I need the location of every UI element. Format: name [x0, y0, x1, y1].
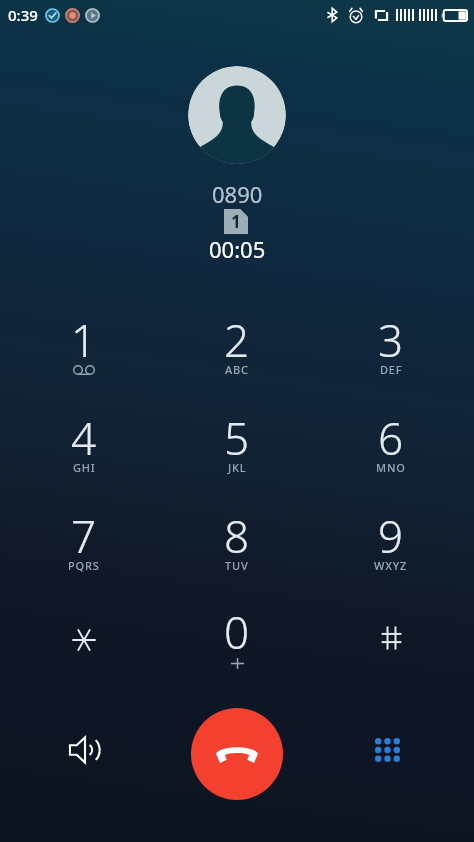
staticText: 6	[378, 408, 404, 468]
staticText: 5	[224, 408, 250, 468]
button[interactable]: Dial 7	[8, 499, 160, 596]
staticText: GHI	[73, 460, 96, 475]
staticText: MNO	[376, 460, 406, 475]
button[interactable]: Star	[8, 595, 160, 692]
button[interactable]: Dial 9	[315, 499, 467, 596]
staticText: JKL	[228, 460, 247, 475]
button[interactable]: Dial 6	[315, 401, 467, 498]
button[interactable]: Dial 4	[8, 401, 160, 498]
button[interactable]: Pound	[315, 595, 467, 692]
staticText: 0	[224, 602, 250, 662]
staticText: 4	[71, 408, 97, 468]
staticText: 00:05	[209, 234, 266, 264]
staticText: ABC	[225, 362, 249, 377]
button[interactable]: Dial 1	[8, 303, 160, 400]
staticText: PQRS	[68, 558, 100, 573]
staticText: WXYZ	[374, 558, 408, 573]
staticText: 0:39	[8, 5, 38, 25]
staticText: 9	[378, 506, 404, 566]
button[interactable]: End call	[191, 708, 283, 800]
staticText: 3	[378, 310, 404, 370]
button[interactable]: Dial 8	[161, 499, 313, 596]
staticText: DEF	[380, 362, 403, 377]
staticText: 7	[71, 506, 97, 566]
staticText: 2	[224, 310, 250, 370]
staticText: 1	[231, 210, 241, 233]
button[interactable]: Speaker	[61, 726, 109, 774]
staticText: TUV	[225, 558, 249, 573]
button[interactable]: Dial 5	[161, 401, 313, 498]
button[interactable]: Keypad	[363, 726, 411, 774]
button[interactable]: Dial 0	[161, 595, 313, 692]
staticText: 8	[224, 506, 250, 566]
button[interactable]: Dial 2	[161, 303, 313, 400]
button[interactable]: Dial 3	[315, 303, 467, 400]
staticText: 0890	[212, 179, 263, 209]
staticText: 1	[71, 310, 97, 370]
